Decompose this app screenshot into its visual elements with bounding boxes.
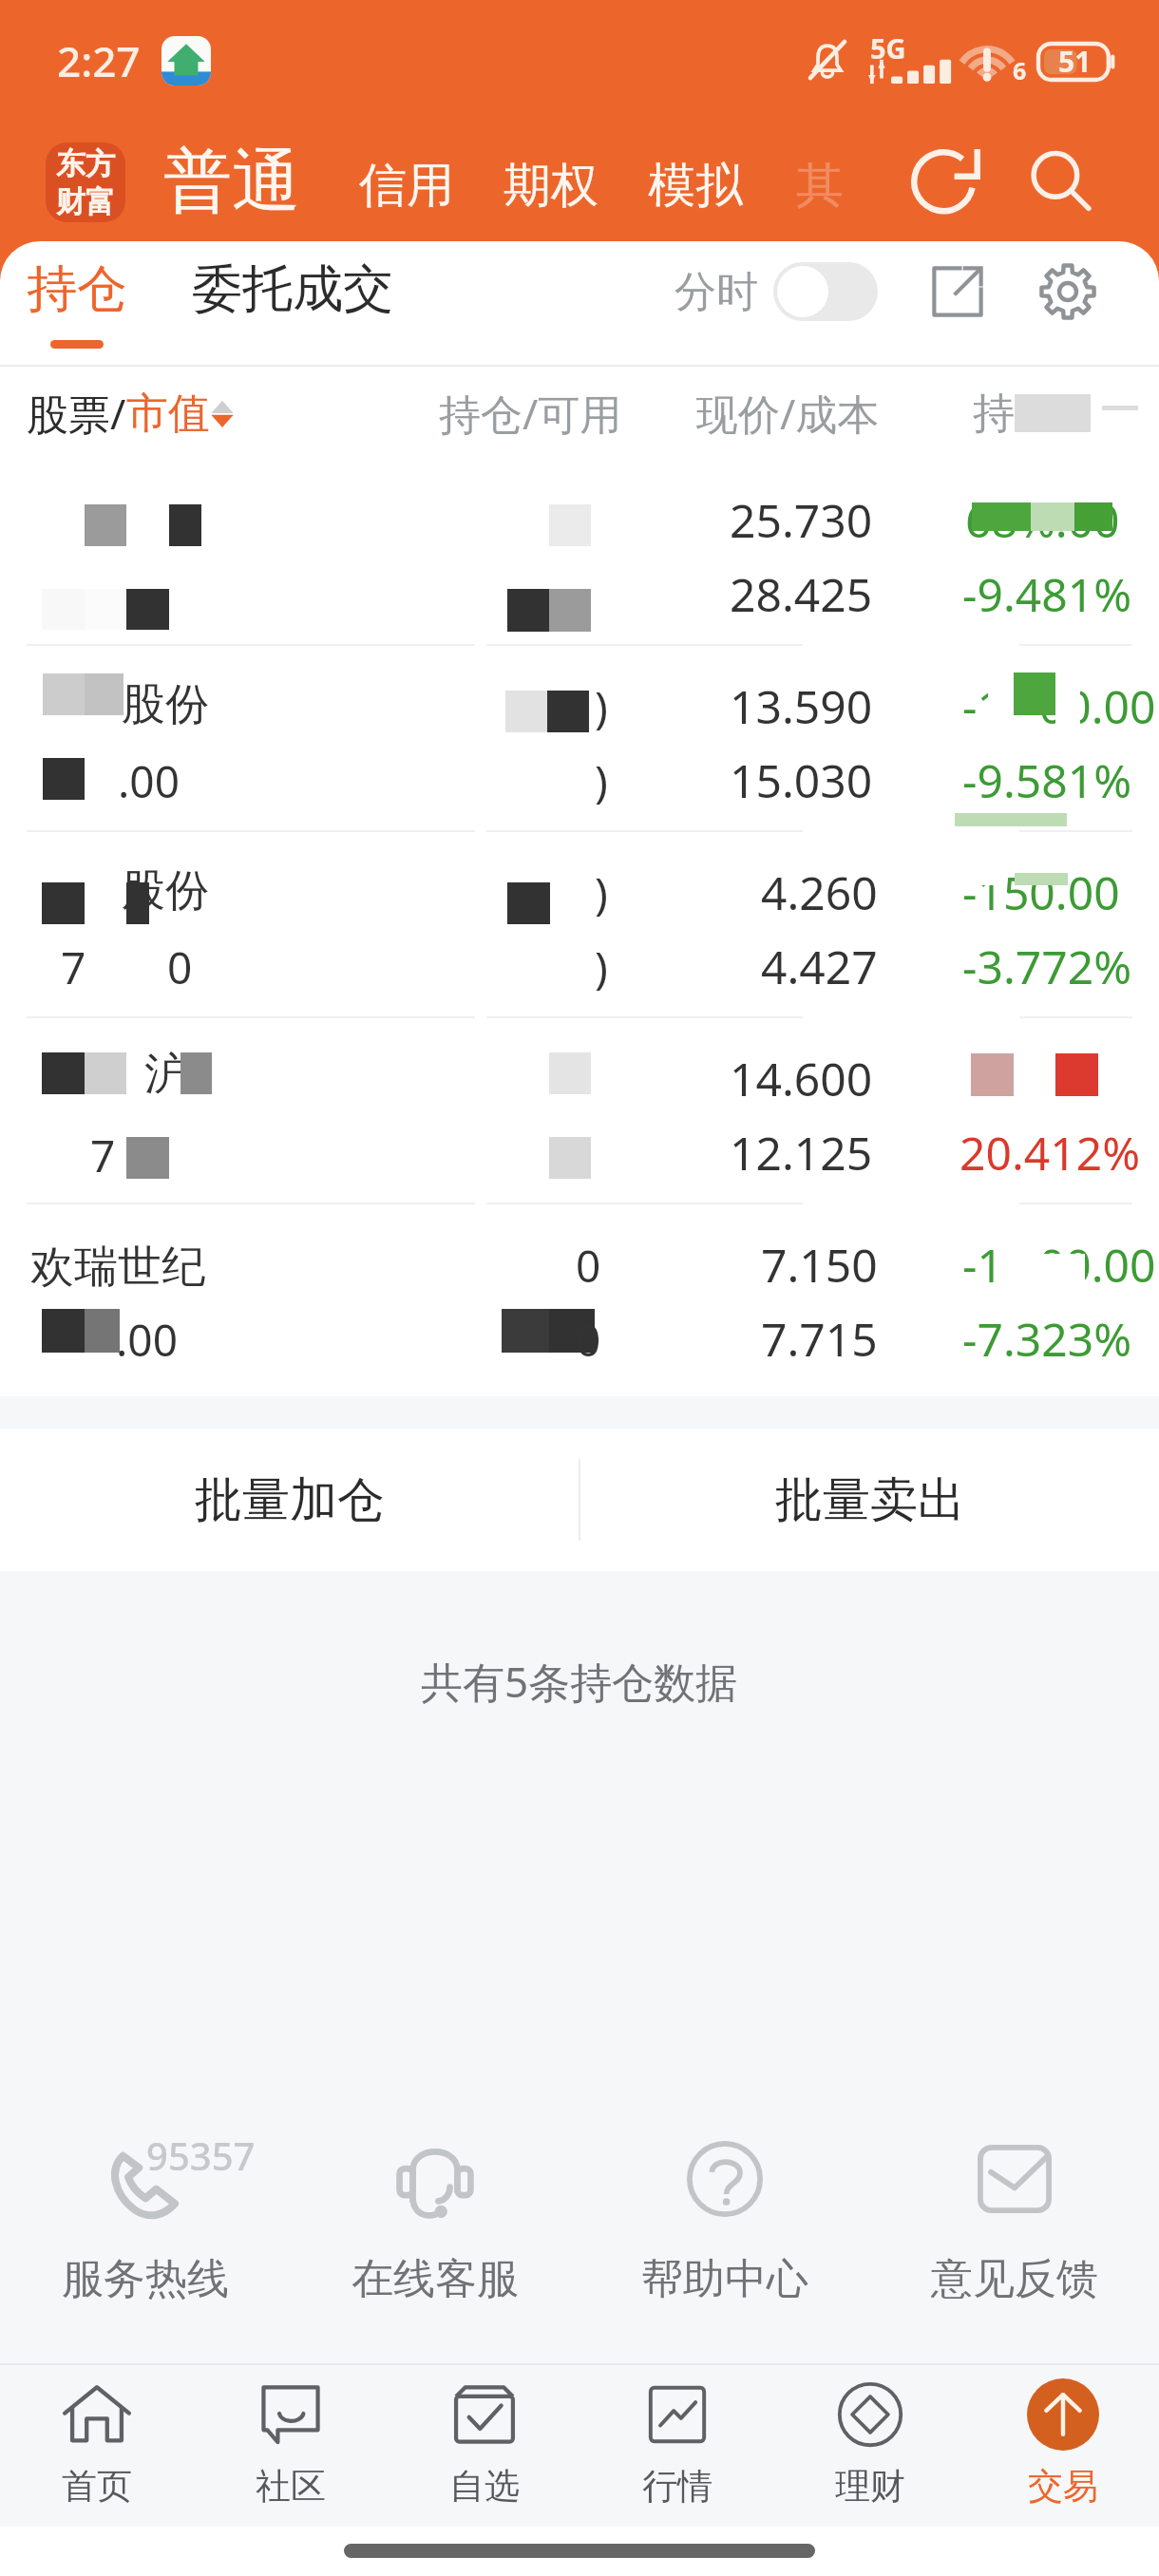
button[interactable]: 股份 <box>0 646 1159 830</box>
staticText: .00 <box>118 751 180 811</box>
staticText: 0 <box>167 938 193 997</box>
staticText: ) <box>595 863 608 923</box>
staticText: 51 <box>1058 42 1092 81</box>
button[interactable]: Refresh <box>895 130 999 235</box>
staticText: 意见反馈 <box>931 2253 1098 2304</box>
staticText: 7 <box>61 938 86 997</box>
button[interactable]: 帮助中心 <box>579 2105 869 2304</box>
staticText: -3.772% <box>962 936 1132 997</box>
button[interactable]: 批量加仓 <box>0 1429 579 1571</box>
button[interactable]: 欢瑞世纪 <box>0 1204 1159 1389</box>
staticText: 社区 <box>256 2464 326 2509</box>
staticText: 13.590 <box>730 675 873 737</box>
staticText: 股份 <box>122 677 209 732</box>
staticText: 首页 <box>62 2464 132 2509</box>
button[interactable]: 95357 <box>0 2105 290 2304</box>
staticText: .00 <box>116 1310 178 1370</box>
button[interactable]: 普通 <box>163 139 300 225</box>
button[interactable]: 模拟 <box>648 156 743 216</box>
staticText: -150.00 <box>962 862 1120 923</box>
staticText: 服务热线 <box>62 2253 229 2304</box>
button[interactable]: 期权 <box>503 156 598 216</box>
button[interactable]: 持仓 <box>27 257 127 349</box>
staticText: 95357 <box>146 2130 256 2181</box>
button[interactable]: 理财 <box>773 2365 966 2527</box>
staticText: 股票/ <box>27 385 126 442</box>
staticText: 2:27 <box>57 32 141 89</box>
staticText: -7.323% <box>962 1308 1132 1370</box>
button[interactable]: 自选 <box>388 2365 580 2527</box>
staticText: 沪 <box>144 1047 188 1102</box>
staticText: 68%.00 <box>965 489 1120 551</box>
button[interactable]: 批量卖出 <box>580 1429 1159 1571</box>
staticText: -1. 00.00 <box>962 1234 1156 1296</box>
staticText: 行情 <box>642 2464 712 2509</box>
staticText: 批量加仓 <box>195 1470 385 1530</box>
staticText: 交易 <box>1028 2464 1098 2509</box>
staticText: 20.412% <box>959 1122 1141 1184</box>
staticText: -9.481% <box>962 563 1132 625</box>
button[interactable]: 社区 <box>194 2365 388 2527</box>
button[interactable]: 分时 <box>674 262 878 321</box>
staticText: 5G <box>870 29 906 66</box>
staticText: -9.581% <box>962 749 1132 811</box>
button[interactable]: 行情 <box>580 2365 773 2527</box>
button[interactable]: Search <box>1009 130 1113 235</box>
staticText: 7.715 <box>761 1308 878 1370</box>
staticText: 欢瑞世纪 <box>30 1240 205 1295</box>
button[interactable]: 意见反馈 <box>869 2105 1159 2304</box>
button[interactable]: 信用 <box>359 156 454 216</box>
staticText: 4.427 <box>761 936 878 997</box>
staticText: ) <box>595 751 608 811</box>
staticText: 15.030 <box>730 749 873 811</box>
button[interactable]: 25.730 <box>0 460 1159 644</box>
staticText: 4.260 <box>761 862 878 923</box>
staticText: ) <box>595 677 608 737</box>
staticText: 持 <box>973 388 1015 440</box>
staticText: 理财 <box>835 2464 905 2509</box>
staticText: 14.600 <box>730 1048 873 1109</box>
staticText: 7 <box>90 1126 116 1185</box>
button[interactable]: East Money logo <box>46 142 125 222</box>
staticText: 在线客服 <box>351 2253 519 2304</box>
staticText: 市值 <box>126 388 210 440</box>
staticText: 持仓/可用 <box>439 385 622 442</box>
button[interactable]: 首页 <box>0 2365 194 2527</box>
staticText: 6 <box>1013 54 1027 86</box>
staticText: 7.150 <box>761 1234 878 1296</box>
staticText: 股份 <box>122 863 209 919</box>
button[interactable]: 股份 <box>0 832 1159 1016</box>
button[interactable]: Settings <box>1022 246 1113 337</box>
staticText: 25.730 <box>730 489 873 551</box>
button[interactable]: Share <box>914 248 1001 335</box>
staticText: 持仓 <box>27 257 127 321</box>
staticText: 帮助中心 <box>641 2253 808 2304</box>
staticText: 共有5条持仓数据 <box>421 1653 738 1710</box>
button[interactable]: 交易 <box>966 2365 1159 2527</box>
staticText: 12.125 <box>730 1122 873 1184</box>
staticText: 分时 <box>674 266 758 318</box>
staticText: 28.425 <box>730 563 873 625</box>
staticText: 批量卖出 <box>775 1470 965 1530</box>
staticText: 财富 <box>56 183 115 220</box>
button[interactable]: 委托成交 <box>192 257 393 321</box>
staticText: 0 <box>576 1236 601 1296</box>
staticText: 东方 <box>56 145 115 182</box>
staticText: 其 <box>796 156 844 216</box>
button[interactable]: 在线客服 <box>290 2105 579 2304</box>
staticText: ) <box>595 938 608 997</box>
staticText: 现价/成本 <box>696 385 880 442</box>
staticText: 自选 <box>449 2464 520 2509</box>
button[interactable]: 沪 <box>0 1018 1159 1203</box>
staticText: -1. 00.00 <box>962 675 1156 737</box>
staticText: 0 <box>576 1310 601 1370</box>
